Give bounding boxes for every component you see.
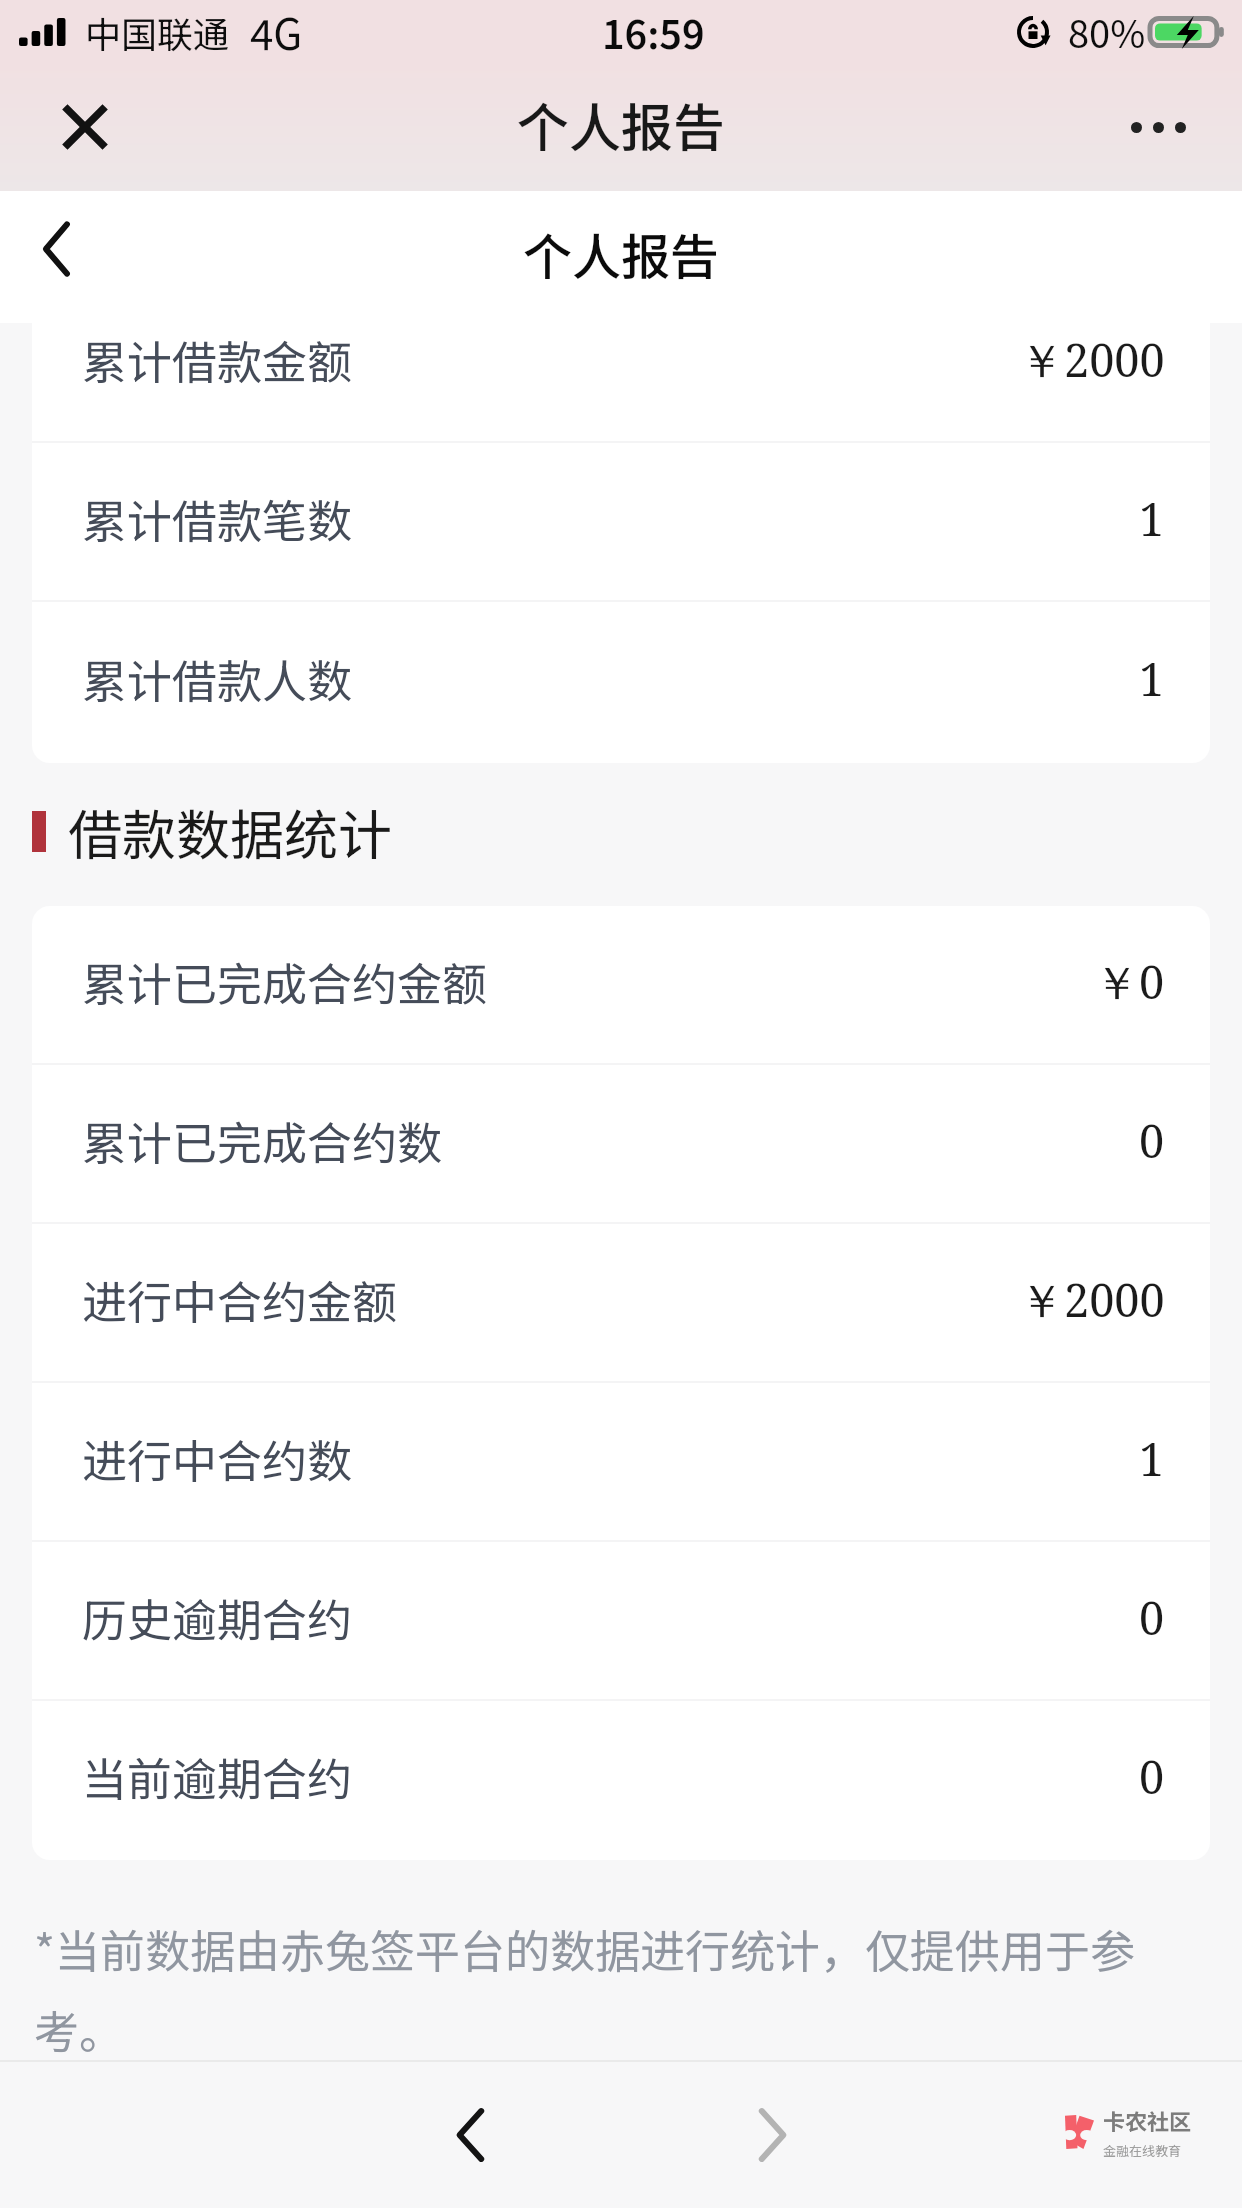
staticText: 80% [1068, 4, 1146, 59]
staticText: 16:59 [602, 4, 705, 60]
button[interactable]: 累计已完成合约金额 [32, 906, 1210, 1065]
staticText: 0 [1139, 1746, 1165, 1807]
staticText: ￥2000 [1019, 329, 1165, 390]
staticText: 借款数据统计 [68, 792, 392, 870]
staticText: *当前数据由赤兔签平台的数据进行统计，仅提供用于参考。 [34, 1916, 1182, 2062]
button[interactable]: 累计借款笔数 [32, 443, 1210, 602]
staticText: 金融在线教育 [1103, 2141, 1182, 2160]
staticText: 个人报告 [517, 87, 726, 162]
button[interactable]: 历史逾期合约 [32, 1542, 1210, 1701]
staticText: 进行中合约金额 [82, 1267, 398, 1332]
button[interactable]: 进行中合约数 [32, 1383, 1210, 1542]
staticText: 当前逾期合约 [82, 1744, 353, 1809]
button[interactable]: 当前逾期合约 [32, 1701, 1210, 1860]
staticText: 0 [1139, 1587, 1165, 1648]
staticText: 累计已完成合约金额 [82, 949, 488, 1014]
button[interactable]: Close [40, 82, 130, 172]
staticText: 4G [250, 1, 303, 62]
staticText: 累计借款金额 [82, 327, 353, 392]
staticText: 0 [1139, 1110, 1165, 1171]
staticText: 历史逾期合约 [82, 1585, 353, 1650]
staticText: 累计借款笔数 [82, 486, 353, 551]
staticText: ￥2000 [1019, 1269, 1165, 1330]
staticText: ￥0 [1094, 951, 1165, 1012]
staticText: 累计借款人数 [82, 646, 353, 711]
staticText: 卡农社区 [1103, 2104, 1192, 2136]
staticText: 累计已完成合约数 [82, 1108, 443, 1173]
button[interactable]: 累计已完成合约数 [32, 1065, 1210, 1224]
button[interactable]: 累计借款金额 [32, 323, 1210, 443]
button[interactable]: Back [415, 2080, 525, 2190]
staticText: 1 [1139, 648, 1165, 709]
button[interactable]: 进行中合约金额 [32, 1224, 1210, 1383]
staticText: 进行中合约数 [82, 1426, 353, 1491]
staticText: 1 [1139, 488, 1165, 549]
staticText: 1 [1139, 1428, 1165, 1489]
staticText: 个人报告 [523, 218, 720, 289]
button[interactable]: More options [1108, 87, 1208, 167]
button[interactable]: 累计借款人数 [32, 602, 1210, 763]
button[interactable]: Forward [718, 2080, 828, 2190]
staticText: 中国联通 [85, 6, 230, 58]
button[interactable]: Back [11, 204, 101, 294]
